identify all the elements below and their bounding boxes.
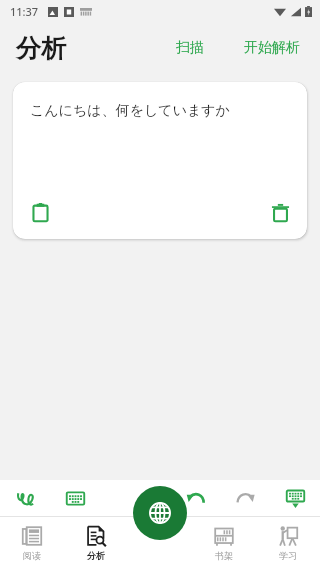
staticText: 分析 <box>87 550 105 561</box>
button[interactable]: 书架 <box>192 517 256 569</box>
button[interactable]: 分析 <box>64 517 128 569</box>
staticText: こんにちは、何をしていますか <box>30 102 230 120</box>
staticText: 11:37 <box>10 4 39 19</box>
button[interactable]: Copy <box>22 194 58 230</box>
button[interactable]: 阅读 <box>0 517 64 569</box>
button[interactable]: Keyboard <box>58 481 92 515</box>
staticText: 学习 <box>279 550 297 561</box>
button[interactable]: Undo <box>178 481 212 515</box>
button[interactable]: Redo <box>228 481 262 515</box>
button[interactable]: 开始解析 <box>238 33 306 63</box>
staticText: 扫描 <box>176 39 204 57</box>
staticText: 开始解析 <box>244 39 300 57</box>
staticText: 书架 <box>215 550 233 561</box>
button[interactable]: Hide keyboard <box>278 481 312 515</box>
button[interactable]: Delete <box>262 194 298 230</box>
staticText: 分析 <box>16 33 66 64</box>
button[interactable]: 扫描 <box>170 33 210 63</box>
staticText: 阅读 <box>23 550 41 561</box>
button[interactable]: 学习 <box>256 517 320 569</box>
button[interactable]: こんにちは、何をしていますか <box>13 82 307 239</box>
button[interactable]: Handwriting <box>8 481 42 515</box>
button[interactable]: Translate <box>133 486 187 540</box>
